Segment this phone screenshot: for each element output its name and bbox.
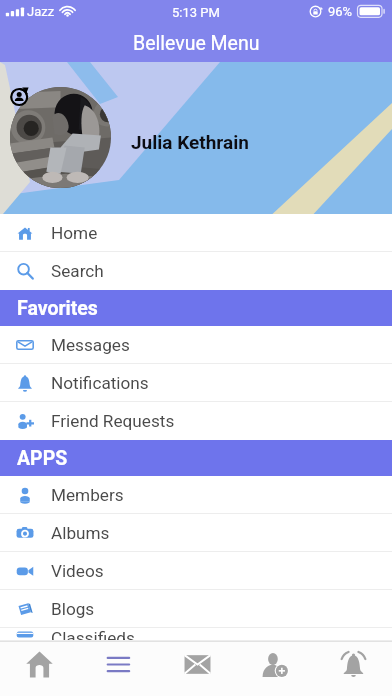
staticText: Blogs bbox=[51, 599, 95, 619]
staticText: Albums bbox=[51, 523, 110, 543]
button[interactable]: Messages bbox=[158, 641, 236, 696]
staticText: Notifications bbox=[51, 373, 149, 393]
button[interactable]: Search bbox=[0, 252, 392, 290]
button[interactable]: Videos bbox=[0, 552, 392, 590]
button[interactable]: Menu bbox=[79, 641, 158, 696]
button[interactable]: Profile photo bbox=[10, 87, 111, 188]
staticText: Bellevue Menu bbox=[133, 32, 260, 55]
staticText: 5:13 PM bbox=[172, 5, 220, 20]
staticText: Videos bbox=[51, 561, 104, 581]
button[interactable]: Albums bbox=[0, 514, 392, 552]
staticText: Jazz bbox=[27, 4, 55, 19]
staticText: Search bbox=[51, 261, 104, 281]
button[interactable]: Members bbox=[0, 476, 392, 514]
button[interactable]: Blogs bbox=[0, 590, 392, 628]
staticText: Friend Requests bbox=[51, 411, 175, 431]
button[interactable]: Change profile photo bbox=[11, 86, 31, 106]
button[interactable]: Home bbox=[0, 214, 392, 252]
staticText: Julia Kethrain bbox=[131, 131, 249, 153]
button[interactable]: Classifieds bbox=[0, 628, 392, 641]
staticText: Messages bbox=[51, 335, 130, 355]
staticText: APPS bbox=[17, 447, 68, 470]
staticText: Favorites bbox=[17, 297, 98, 320]
staticText: Members bbox=[51, 485, 124, 505]
button[interactable]: Messages bbox=[0, 326, 392, 364]
staticText: 96% bbox=[328, 4, 353, 19]
button[interactable]: Notifications bbox=[0, 364, 392, 402]
button[interactable]: Friend Requests bbox=[236, 641, 314, 696]
button[interactable]: Home bbox=[0, 641, 79, 696]
button[interactable]: Notifications bbox=[314, 641, 392, 696]
staticText: Classifieds bbox=[51, 628, 135, 641]
button[interactable]: Friend Requests bbox=[0, 402, 392, 440]
staticText: Home bbox=[51, 223, 98, 243]
